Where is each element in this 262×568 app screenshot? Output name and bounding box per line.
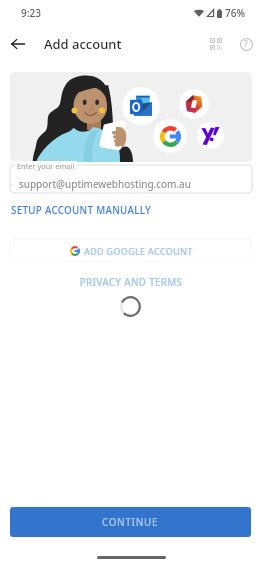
button[interactable]: CONTINUE — [10, 507, 251, 537]
button[interactable]: Scan QR code — [204, 32, 228, 56]
button[interactable]: SETUP ACCOUNT MANUALLY — [10, 203, 152, 218]
staticText: Enter your email — [17, 161, 75, 171]
staticText: 76% — [225, 6, 245, 20]
staticText: CONTINUE — [102, 516, 159, 529]
staticText: support@uptimewebhosting.com.au — [19, 177, 191, 191]
staticText: 9:23 — [21, 6, 41, 20]
staticText: ADD GOOGLE ACCOUNT — [84, 245, 193, 257]
staticText: Add account — [44, 35, 122, 53]
staticText: ? — [244, 38, 248, 50]
button[interactable]: PRIVACY AND TERMS — [0, 276, 262, 289]
button[interactable]: ADD GOOGLE ACCOUNT — [10, 239, 252, 262]
button[interactable]: Back — [5, 31, 31, 57]
button[interactable]: Help — [234, 32, 258, 56]
